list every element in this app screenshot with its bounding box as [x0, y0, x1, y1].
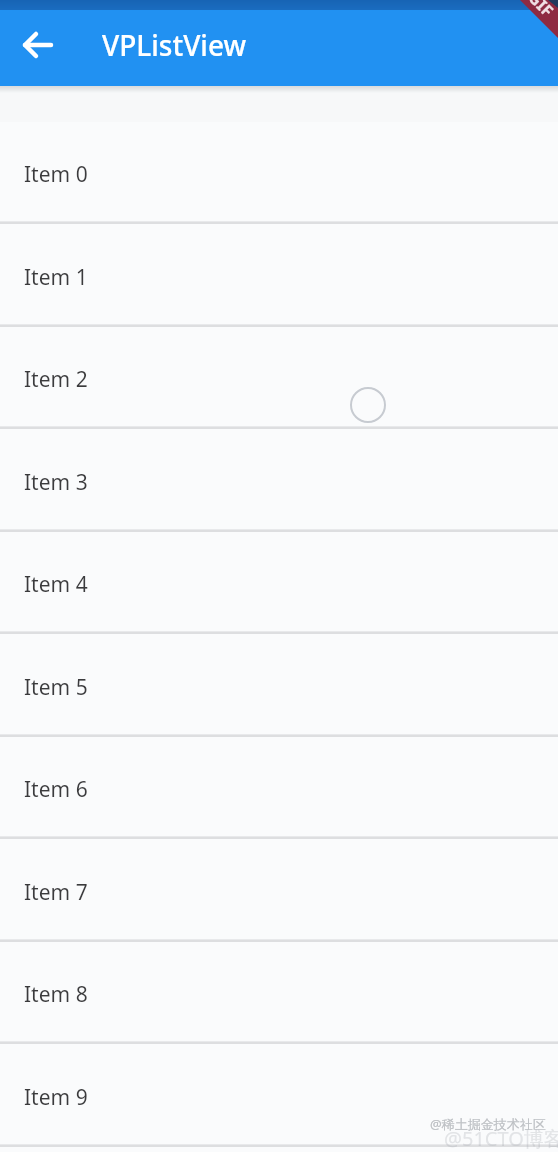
button[interactable]: Item 5	[0, 634, 558, 737]
button[interactable]: Item 9	[0, 1044, 558, 1147]
staticText: Item 6	[24, 775, 88, 804]
button[interactable]: Item 2	[0, 327, 558, 429]
staticText: Item 1	[24, 263, 88, 292]
staticText: Item 0	[24, 160, 88, 189]
button[interactable]: Item 0	[0, 122, 558, 224]
staticText: @稀土掘金技术社区	[430, 1115, 546, 1133]
staticText: Item 4	[24, 570, 88, 599]
button[interactable]: Item 3	[0, 429, 558, 532]
staticText: Item 8	[24, 980, 88, 1009]
button[interactable]: Item 7	[0, 839, 558, 942]
staticText: GIF	[524, 0, 558, 21]
staticText: Item 9	[24, 1083, 88, 1112]
button[interactable]: Item 1	[0, 224, 558, 327]
staticText: Item 2	[24, 365, 88, 394]
button[interactable]	[12, 19, 64, 71]
button[interactable]: Item 6	[0, 737, 558, 839]
staticText: VPListView	[102, 26, 247, 64]
button[interactable]: Item 4	[0, 532, 558, 634]
staticText: Item 3	[24, 468, 88, 497]
staticText: Item 7	[24, 878, 88, 907]
staticText: @51CTO博客	[444, 1125, 558, 1152]
button[interactable]: Item 8	[0, 942, 558, 1044]
staticText: Item 5	[24, 673, 88, 702]
